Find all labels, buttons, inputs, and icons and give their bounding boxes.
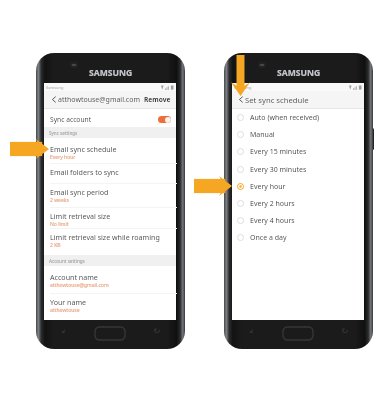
- staticText: SAMSUNG: [277, 67, 321, 79]
- other: Step pointer: [10, 139, 49, 159]
- button[interactable]: Manual: [232, 126, 364, 143]
- button[interactable]: Navigate up: [44, 91, 176, 108]
- staticText: Email sync period: [50, 187, 109, 197]
- button[interactable]: Every 2 hours: [232, 195, 364, 212]
- button[interactable]: Email folders to sync: [44, 167, 176, 177]
- staticText: Manual: [250, 130, 275, 140]
- button[interactable]: Auto (when received): [232, 109, 364, 126]
- button[interactable]: Sync account: [44, 109, 176, 129]
- staticText: Once a day: [250, 233, 287, 243]
- staticText: Limit retrieval size while roaming: [50, 232, 160, 242]
- button[interactable]: Home: [93, 325, 127, 341]
- staticText: Sync settings: [49, 130, 78, 136]
- staticText: SAMSUNG: [89, 67, 133, 79]
- staticText: Samsung: [234, 85, 252, 90]
- staticText: Account settings: [49, 258, 85, 264]
- staticText: Email sync schedule: [50, 144, 117, 154]
- other: Navigate up: [239, 96, 243, 103]
- staticText: Account name: [50, 272, 98, 282]
- other: Step pointer: [231, 55, 250, 96]
- staticText: atthowtouse@gmail.com: [50, 282, 109, 289]
- button[interactable]: Email sync period: [44, 187, 176, 204]
- staticText: atthowtouse: [50, 307, 80, 314]
- staticText: Samsung: [46, 85, 64, 90]
- staticText: atthowtouse@gmail.com: [58, 95, 140, 105]
- button[interactable]: Back: [152, 326, 162, 335]
- other: Navigate up: [52, 96, 56, 103]
- staticText: Your name: [50, 297, 87, 307]
- button[interactable]: Account name: [44, 272, 176, 289]
- staticText: Every 4 hours: [250, 216, 295, 226]
- staticText: No limit: [50, 221, 69, 228]
- button[interactable]: Every 4 hours: [232, 212, 364, 229]
- staticText: Set sync schedule: [245, 95, 309, 105]
- button[interactable]: Recents: [247, 326, 257, 335]
- staticText: Auto (when received): [250, 113, 320, 123]
- staticText: 2 weeks: [50, 197, 69, 204]
- staticText: Every hour: [250, 182, 286, 192]
- button[interactable]: Every hour: [232, 178, 364, 195]
- staticText: Sync account: [50, 115, 92, 124]
- button[interactable]: Recents: [59, 326, 69, 335]
- button[interactable]: Limit retrieval size: [44, 211, 176, 228]
- other: Step pointer: [194, 176, 232, 196]
- button[interactable]: Every 15 minutes: [232, 143, 364, 160]
- button[interactable]: Limit retrieval size while roaming: [44, 232, 176, 249]
- button[interactable]: Home: [281, 325, 315, 341]
- button[interactable]: Email sync schedule: [44, 144, 176, 161]
- staticText: Every 2 hours: [250, 199, 295, 209]
- staticText: 2 KB: [50, 242, 61, 249]
- staticText: Every hour: [50, 154, 76, 161]
- button[interactable]: Your name: [44, 297, 176, 314]
- staticText: Limit retrieval size: [50, 211, 111, 221]
- button[interactable]: Once a day: [232, 229, 364, 246]
- staticText: Email folders to sync: [50, 167, 119, 177]
- button[interactable]: Back: [340, 326, 350, 335]
- staticText: Every 30 minutes: [250, 165, 307, 175]
- staticText: Every 15 minutes: [250, 147, 307, 157]
- button[interactable]: Every 30 minutes: [232, 161, 364, 178]
- staticText: Remove: [144, 95, 171, 104]
- button[interactable]: Navigate up: [232, 91, 364, 108]
